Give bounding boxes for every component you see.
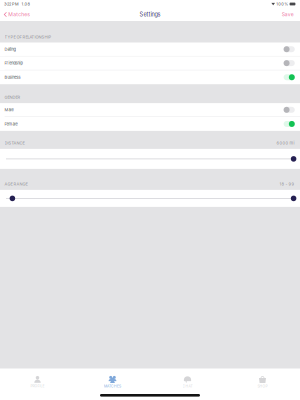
staticText: 18 - 99 (279, 181, 294, 186)
staticText: SHOP (257, 384, 267, 388)
staticText: Dating (5, 47, 16, 52)
staticText: GENDER (5, 95, 21, 100)
button[interactable]: PROFILE (0, 376, 75, 388)
button[interactable]: MATCHES (75, 376, 150, 388)
button[interactable]: Business (0, 70, 300, 84)
staticText: 100% (276, 2, 288, 6)
button[interactable]: SHOP (225, 376, 300, 388)
staticText: Male (5, 107, 14, 112)
button[interactable]: CHAT (150, 376, 225, 388)
staticText: PROFILE (30, 384, 44, 388)
staticText: CHAT (182, 384, 192, 388)
staticText: Settings (139, 11, 160, 18)
button[interactable]: Friendship (0, 56, 300, 70)
staticText: MATCHES (104, 384, 121, 388)
staticText: DISTANCE (5, 140, 25, 145)
staticText: Business (5, 75, 21, 80)
staticText: Matches (8, 11, 30, 17)
staticText: Friendship (5, 61, 23, 65)
button[interactable]: Dating (0, 42, 300, 56)
staticText: TYPE OF RELATIONSHIP (5, 34, 52, 39)
button[interactable]: Matches (4, 8, 30, 20)
staticText: AGE RANGE (5, 181, 28, 186)
staticText: 1.08 (21, 2, 29, 6)
staticText: Save (282, 11, 294, 17)
button[interactable]: Female (0, 117, 300, 131)
staticText: 3:22 PM (4, 2, 19, 6)
staticText: Female (5, 121, 18, 126)
button[interactable]: Save (282, 8, 294, 20)
staticText: 6000 mi (276, 140, 294, 145)
button[interactable]: Male (0, 103, 300, 117)
